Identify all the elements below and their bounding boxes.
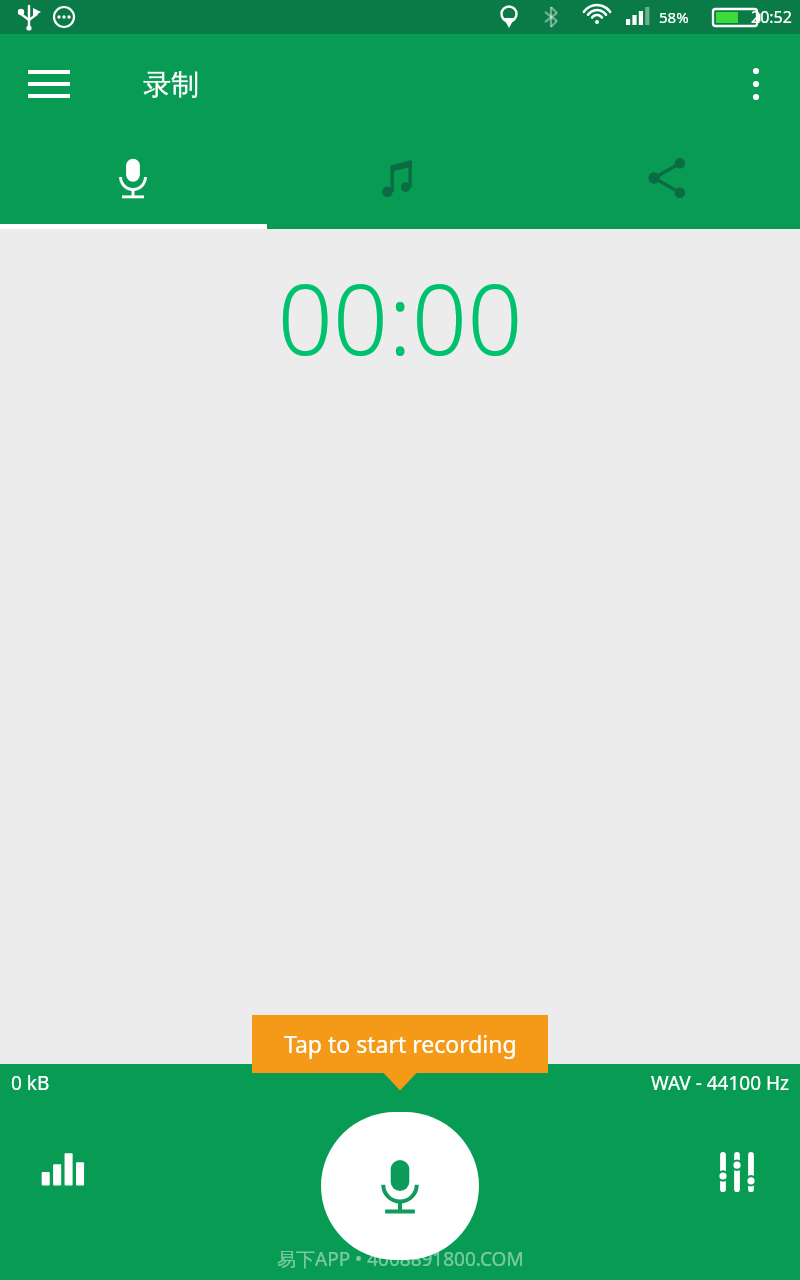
- staticText: 录制: [143, 67, 199, 102]
- button[interactable]: More options: [730, 58, 782, 110]
- button[interactable]: Tap to start recording: [321, 1112, 479, 1260]
- staticText: 0 kB: [11, 1070, 50, 1096]
- staticText: 易下APP • 4008891800.COM: [277, 1246, 524, 1272]
- staticText: 58%: [659, 7, 689, 27]
- button[interactable]: Audio levels: [30, 1139, 96, 1205]
- staticText: 00:00: [277, 251, 523, 383]
- button[interactable]: Settings: [704, 1139, 770, 1205]
- button[interactable]: Open navigation menu: [22, 57, 76, 111]
- button[interactable]: Recordings list tab: [266, 134, 533, 229]
- staticText: 20:52: [751, 6, 792, 28]
- button[interactable]: Share tab: [533, 134, 800, 229]
- staticText: WAV - 44100 Hz: [651, 1070, 789, 1096]
- button[interactable]: Record tab: [0, 134, 266, 229]
- staticText: Tap to start recording: [284, 1028, 517, 1059]
